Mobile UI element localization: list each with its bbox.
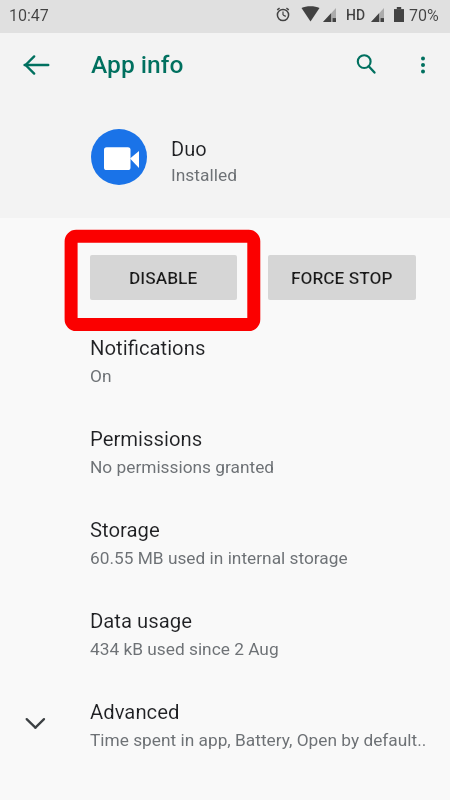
staticText: 60.55 MB used in internal storage bbox=[90, 548, 348, 568]
button[interactable]: Permissions bbox=[0, 423, 450, 514]
button[interactable]: Data usage bbox=[0, 605, 450, 696]
staticText: App info bbox=[91, 50, 184, 79]
button[interactable]: DISABLE bbox=[90, 255, 237, 300]
button[interactable]: Advanced bbox=[0, 696, 450, 768]
staticText: 10:47 bbox=[9, 6, 49, 25]
staticText: DISABLE bbox=[129, 268, 198, 288]
button[interactable]: Storage bbox=[0, 514, 450, 605]
staticText: Installed bbox=[171, 165, 237, 185]
button[interactable]: Back bbox=[12, 41, 60, 89]
staticText: No permissions granted bbox=[90, 457, 275, 477]
staticText: Duo bbox=[171, 137, 207, 160]
button[interactable]: More options bbox=[399, 41, 447, 89]
button[interactable]: FORCE STOP bbox=[268, 255, 416, 300]
button[interactable]: Search bbox=[343, 41, 391, 89]
staticText: Advanced bbox=[90, 700, 180, 724]
staticText: Notifications bbox=[90, 336, 206, 360]
staticText: 70% bbox=[409, 6, 439, 25]
button[interactable]: Notifications bbox=[0, 332, 450, 423]
staticText: HD bbox=[346, 7, 366, 23]
staticText: Storage bbox=[90, 518, 160, 542]
staticText: 434 kB used since 2 Aug bbox=[90, 639, 279, 659]
staticText: FORCE STOP bbox=[291, 268, 393, 288]
staticText: On bbox=[90, 366, 112, 386]
staticText: Time spent in app, Battery, Open by defa… bbox=[90, 730, 427, 750]
staticText: Data usage bbox=[90, 609, 192, 633]
staticText: Permissions bbox=[90, 427, 203, 451]
